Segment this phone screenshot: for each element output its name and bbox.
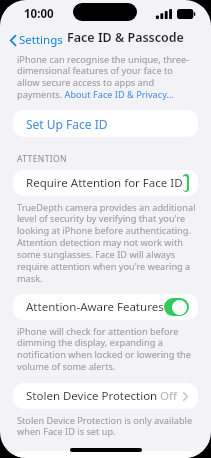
- button[interactable]: Turn Passcode Off: [13, 451, 198, 458]
- staticText: Stolen Device Protection: [26, 388, 158, 404]
- staticText: Face ID & Passcode: [67, 29, 184, 46]
- other: Toggle on: [183, 174, 189, 192]
- staticText: Stolen Device Protection is only availab…: [17, 414, 197, 438]
- staticText: iPhone will check for attention before d…: [17, 325, 197, 373]
- button[interactable]: Attention-Aware Features: [13, 294, 198, 320]
- button[interactable]: Stolen Device Protection: [13, 383, 198, 409]
- staticText: 10:00: [24, 6, 54, 22]
- staticText: Set Up Face ID: [26, 116, 108, 132]
- button[interactable]: Set Up Face ID: [13, 110, 198, 137]
- staticText: Off: [160, 388, 177, 404]
- staticText: Settings: [19, 32, 63, 48]
- other: Toggle on: [164, 298, 189, 316]
- staticText: Attention-Aware Features: [26, 299, 164, 315]
- staticText: TrueDepth camera provides an additional …: [17, 201, 197, 285]
- staticText: ATTENTION: [17, 153, 67, 165]
- staticText: iPhone can recognise the unique, three-d…: [17, 53, 197, 101]
- button[interactable]: Settings: [8, 30, 65, 50]
- button[interactable]: Require Attention for Face ID: [13, 170, 198, 196]
- staticText: Require Attention for Face ID: [26, 175, 183, 191]
